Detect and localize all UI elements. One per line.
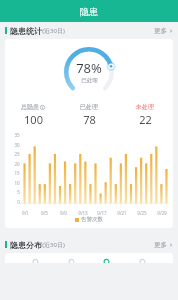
button[interactable]: 更多 xyxy=(149,238,178,252)
staticText: 9/25 xyxy=(137,210,147,216)
staticText: 9/1 xyxy=(22,210,29,216)
staticText: 9/17 xyxy=(97,210,107,216)
staticText: (近30日) xyxy=(42,241,65,249)
staticText: 隐患分布 xyxy=(10,240,42,250)
staticText: 更多 xyxy=(154,27,167,35)
staticText: 9/29 xyxy=(157,210,167,216)
other: 说明 xyxy=(40,105,45,110)
staticText: 9/21 xyxy=(117,210,127,216)
staticText: 已处理 xyxy=(80,103,98,111)
button[interactable]: 78% xyxy=(5,39,173,228)
staticText: 隐患统计 xyxy=(10,26,42,36)
staticText: 9/9 xyxy=(60,210,67,216)
staticText: 已处理 xyxy=(81,77,98,84)
staticText: 78% xyxy=(76,59,102,77)
staticText: 5 xyxy=(17,189,20,195)
staticText: 78 xyxy=(83,112,96,127)
staticText: (近30日) xyxy=(42,27,65,35)
staticText: 20 xyxy=(14,161,20,167)
button[interactable]: 隐患分布 xyxy=(0,236,178,253)
staticText: 9/13 xyxy=(78,210,88,216)
staticText: 0 xyxy=(17,199,20,205)
button[interactable]: 更多 xyxy=(149,24,178,38)
staticText: 未处理 xyxy=(136,103,154,111)
staticText: 25 xyxy=(14,151,20,157)
button[interactable]: 未处理 xyxy=(117,103,173,127)
staticText: 告警次数 xyxy=(81,216,103,223)
staticText: 15 xyxy=(14,170,20,176)
staticText: 30 xyxy=(14,142,20,148)
staticText: 35 xyxy=(14,132,20,138)
button[interactable]: 隐患统计 xyxy=(0,22,178,39)
button[interactable] xyxy=(5,253,173,263)
staticText: 22 xyxy=(139,112,152,127)
staticText: 更多 xyxy=(154,241,167,249)
staticText: 10 xyxy=(14,180,20,186)
staticText: 隐患 xyxy=(80,6,98,17)
staticText: 9/5 xyxy=(41,210,48,216)
staticText: 总隐患 xyxy=(21,103,39,111)
staticText: 100 xyxy=(24,112,43,127)
button[interactable]: 总隐患 xyxy=(5,103,61,127)
button[interactable]: 已处理 xyxy=(61,103,117,127)
